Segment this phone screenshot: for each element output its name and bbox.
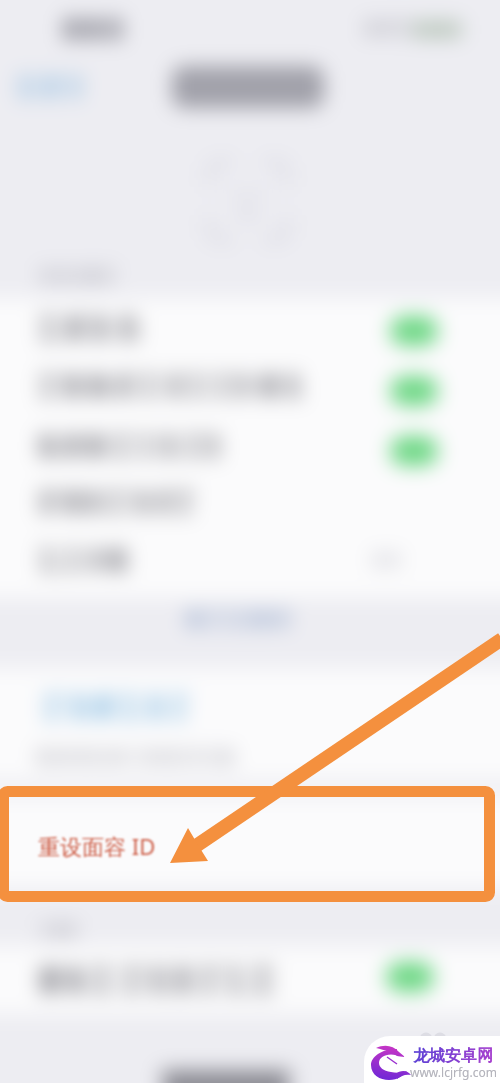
button[interactable]: Toggle — [390, 316, 438, 346]
button[interactable] — [36, 690, 186, 722]
button[interactable]: 重设面容 ID — [38, 831, 156, 861]
button[interactable] — [0, 796, 500, 888]
button[interactable]: Toggle — [386, 962, 434, 992]
button[interactable]: Toggle — [390, 436, 438, 466]
button[interactable]: Back — [6, 70, 92, 104]
staticText: www.lcjrfg.com — [410, 1064, 497, 1080]
staticText: 龙城安卓网 — [413, 1046, 493, 1066]
button[interactable]: Toggle — [390, 376, 438, 406]
